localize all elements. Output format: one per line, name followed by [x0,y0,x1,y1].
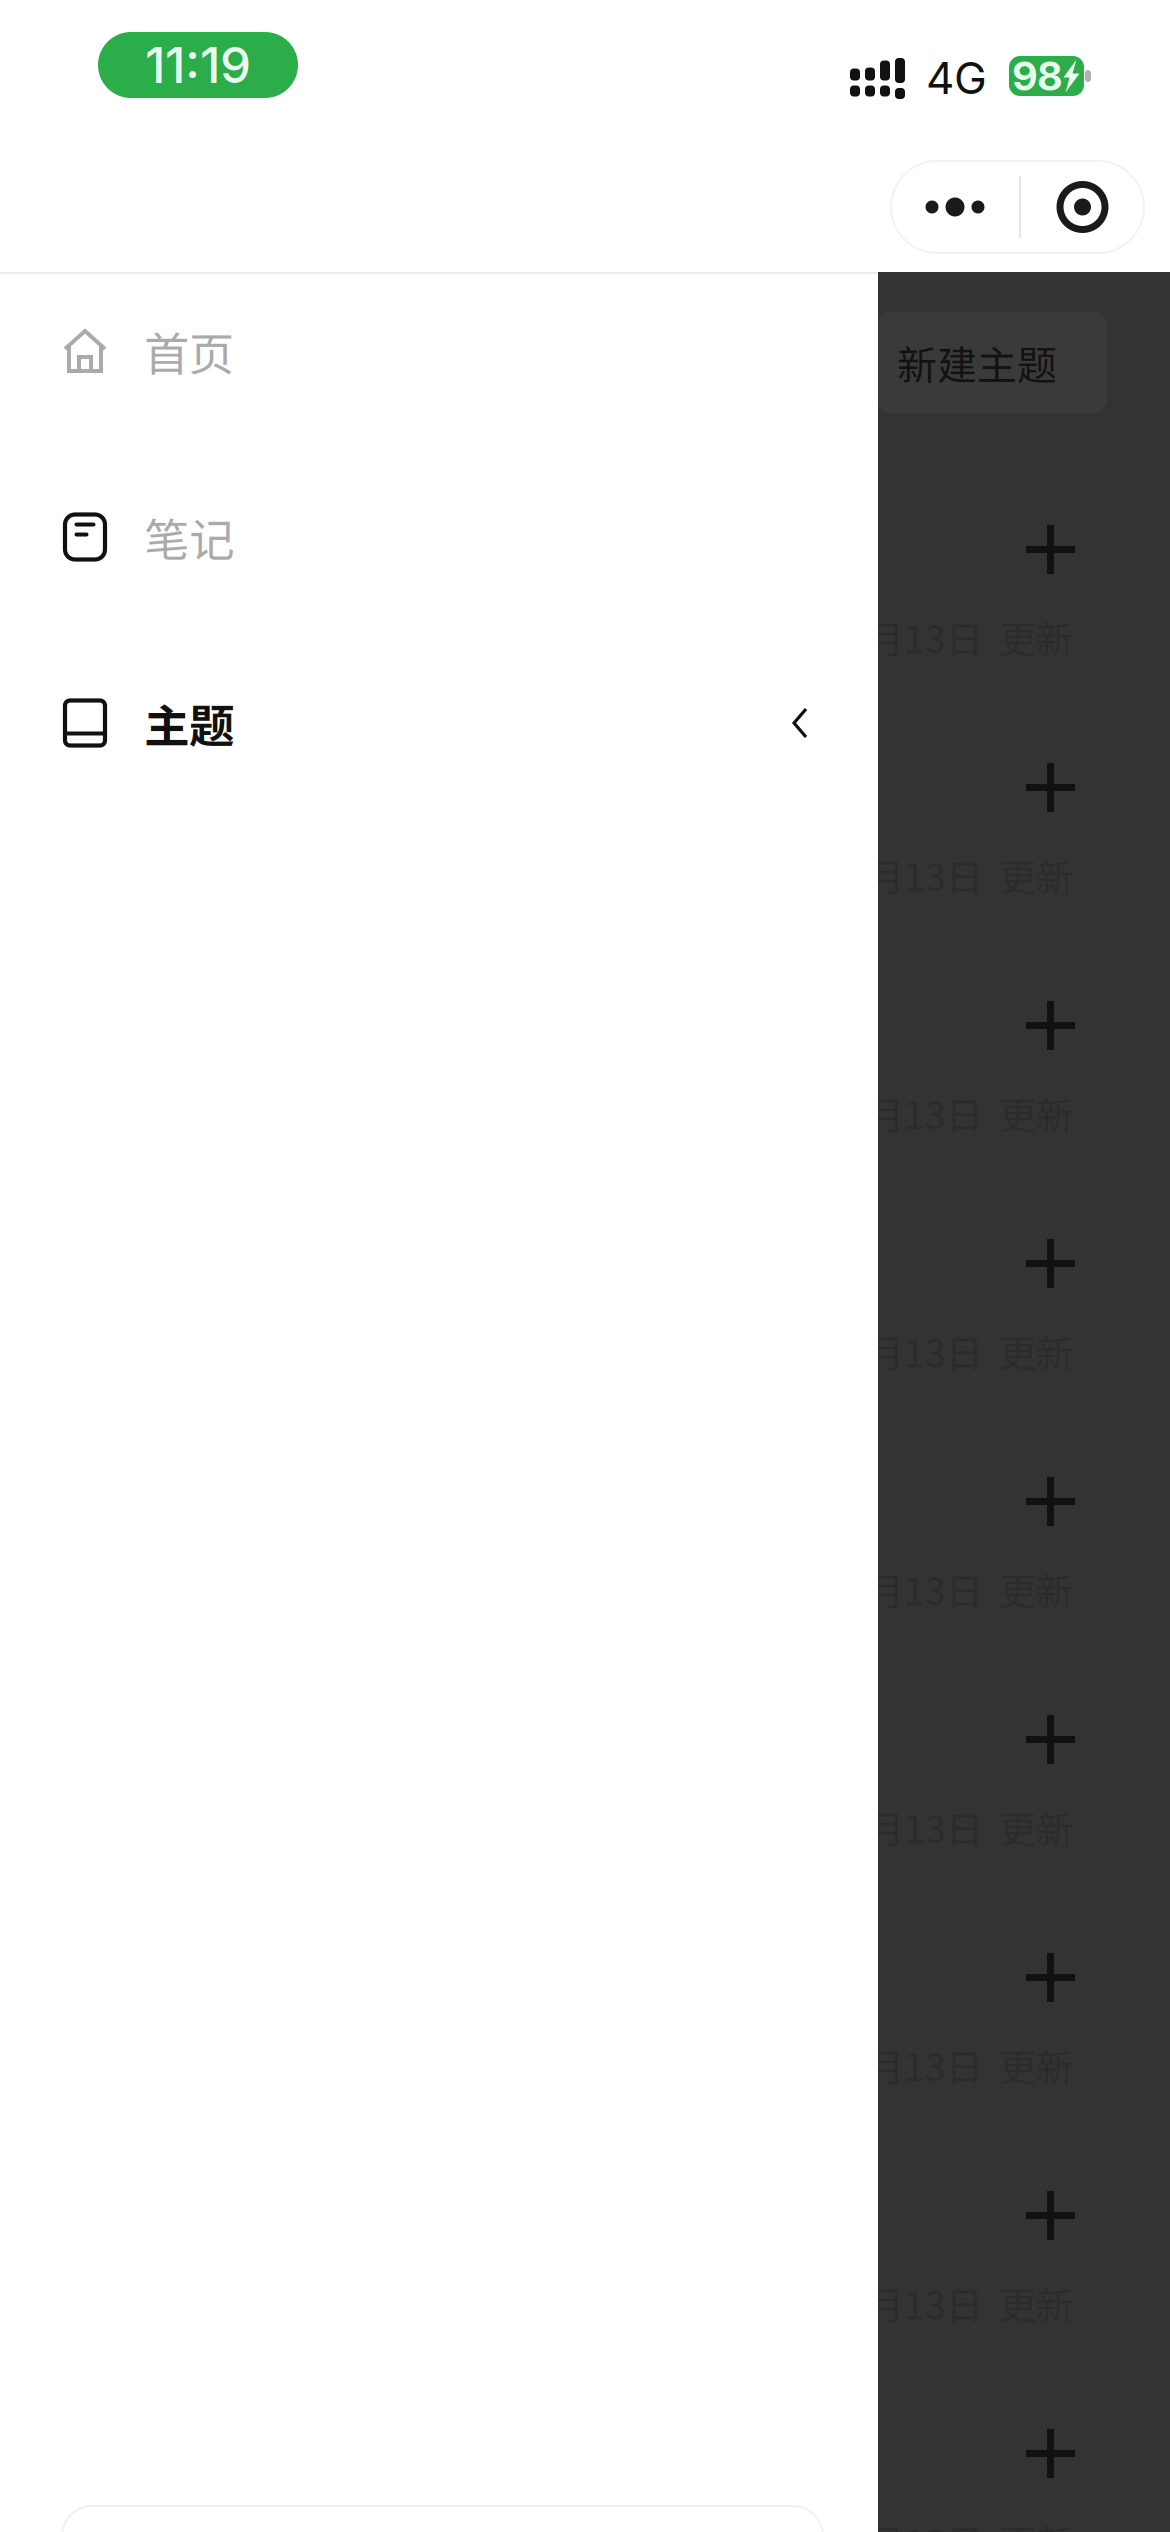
staticText: 月13日 更新 [867,610,1073,664]
staticText: 首页 [144,318,234,384]
staticText: 新建主题 [897,333,1057,391]
staticText: 月13日 更新 [867,2276,1073,2330]
staticText: 11:19 [145,35,251,95]
staticText: 月13日 更新 [867,1800,1073,1854]
staticText: 笔记 [144,504,234,570]
staticText: 主题 [144,690,234,756]
button[interactable]: 首页 [0,258,878,444]
staticText: 月13日 更新 [867,1562,1073,1616]
button[interactable]: Account card [62,2506,823,2532]
staticText: 98 [1012,52,1062,100]
staticText: 月13日 更新 [867,848,1073,902]
button[interactable]: 笔记 [0,444,878,630]
staticText: 月13日 更新 [867,1086,1073,1140]
staticText: 月13日 更新 [867,2038,1073,2092]
button[interactable]: More [891,161,1019,253]
staticText: 月13日 更新 [867,2514,1073,2532]
button[interactable]: 主题 [0,630,878,816]
staticText: 月13日 更新 [867,1324,1073,1378]
button[interactable]: Close mini program [1021,161,1144,253]
staticText: 4G [926,51,987,105]
